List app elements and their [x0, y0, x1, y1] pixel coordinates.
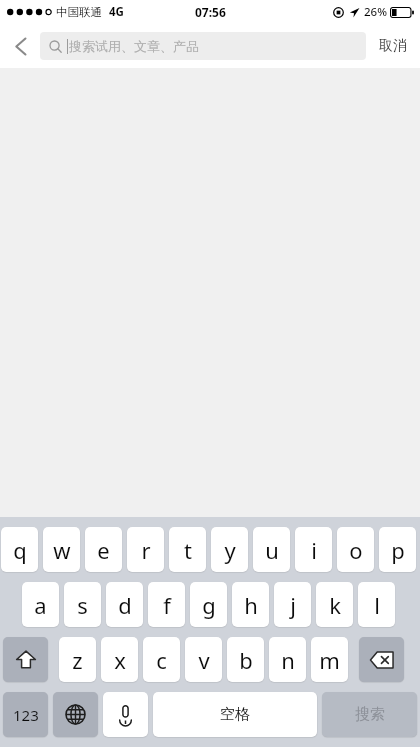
staticText: m [319, 645, 340, 675]
staticText: d [118, 590, 132, 620]
button[interactable]: v [185, 637, 222, 682]
button[interactable]: w [43, 527, 80, 572]
button[interactable]: f [148, 582, 185, 627]
button[interactable]: m [311, 637, 348, 682]
button[interactable]: Back [0, 24, 40, 68]
button[interactable]: k [316, 582, 353, 627]
staticText: a [34, 590, 47, 620]
button[interactable]: h [232, 582, 269, 627]
staticText: 搜索试用、文章、产品 [69, 38, 199, 54]
staticText: v [198, 645, 210, 675]
button[interactable]: u [253, 527, 290, 572]
staticText: b [239, 645, 253, 675]
button[interactable]: x [101, 637, 138, 682]
button[interactable]: b [227, 637, 264, 682]
staticText: c [156, 645, 167, 675]
button[interactable]: i [295, 527, 332, 572]
staticText: s [77, 590, 88, 620]
staticText: x [114, 645, 126, 675]
button[interactable]: c [143, 637, 180, 682]
staticText: 07:56 [195, 4, 226, 20]
button[interactable]: g [190, 582, 227, 627]
button[interactable]: t [169, 527, 206, 572]
button[interactable]: 空格 [153, 692, 317, 737]
staticText: 搜索 [355, 705, 385, 724]
staticText: p [391, 535, 405, 565]
button[interactable]: p [379, 527, 416, 572]
button[interactable]: y [211, 527, 248, 572]
button[interactable]: d [106, 582, 143, 627]
button[interactable]: 搜索试用、文章、产品 [40, 32, 366, 60]
staticText: t [184, 535, 192, 565]
staticText: o [349, 535, 363, 565]
button[interactable]: q [1, 527, 38, 572]
button[interactable]: 搜索 [322, 692, 417, 737]
staticText: g [202, 590, 216, 620]
staticText: q [13, 535, 27, 565]
button[interactable]: o [337, 527, 374, 572]
button[interactable]: 取消 [379, 24, 407, 68]
staticText: l [374, 590, 380, 620]
staticText: 取消 [379, 37, 407, 55]
button[interactable]: e [85, 527, 122, 572]
button[interactable]: j [274, 582, 311, 627]
staticText: 123 [13, 705, 39, 725]
staticText: 26% [364, 4, 387, 20]
button[interactable]: z [59, 637, 96, 682]
button[interactable]: Dictation [103, 692, 148, 737]
button[interactable]: a [22, 582, 59, 627]
button[interactable]: Shift [3, 637, 48, 682]
staticText: 空格 [220, 705, 250, 724]
button[interactable]: n [269, 637, 306, 682]
staticText: j [290, 590, 296, 620]
staticText: h [244, 590, 258, 620]
staticText: e [97, 535, 110, 565]
button[interactable]: 123 [3, 692, 48, 737]
staticText: z [72, 645, 83, 675]
staticText: f [163, 590, 171, 620]
button[interactable]: s [64, 582, 101, 627]
button[interactable]: r [127, 527, 164, 572]
button[interactable]: Backspace [359, 637, 404, 682]
staticText: 4G [109, 4, 124, 20]
staticText: r [141, 535, 151, 565]
staticText: w [53, 535, 71, 565]
staticText: i [311, 535, 317, 565]
staticText: 中国联通 [56, 5, 102, 19]
button[interactable]: Switch language [53, 692, 98, 737]
staticText: y [224, 535, 236, 565]
staticText: u [265, 535, 279, 565]
staticText: k [329, 590, 341, 620]
button[interactable]: l [358, 582, 395, 627]
staticText: n [281, 645, 295, 675]
